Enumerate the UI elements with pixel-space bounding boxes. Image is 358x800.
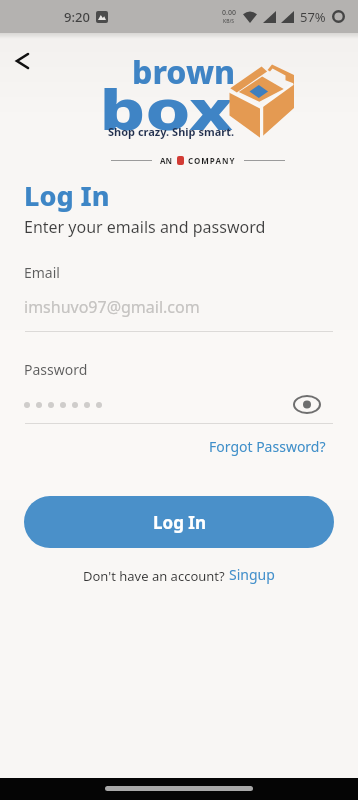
staticText: brown [132,50,236,94]
staticText: Log In [153,511,206,534]
staticText: Don't have an account? [83,567,229,585]
staticText: Enter your emails and password [24,216,266,238]
staticText: Log In [24,177,110,214]
staticText: 9:20 [64,8,90,26]
staticText: box [99,71,233,146]
staticText: Password [24,360,88,379]
staticText: Email [24,263,60,282]
button[interactable]: Singup [229,566,275,585]
staticText: imshuvo97@gmail.com [24,296,200,318]
staticText: Forgot Password? [209,437,326,456]
button[interactable] [8,47,36,75]
button[interactable] [289,391,325,417]
button[interactable]: Log In [24,496,334,548]
staticText: KB/S [223,18,235,25]
staticText: AN [160,155,173,166]
button[interactable]: Forgot Password? [209,437,326,456]
staticText: Shop crazy. Ship smart. [108,124,235,139]
staticText: COMPANY [188,155,236,166]
staticText: 57% [300,8,326,26]
staticText: Singup [229,565,275,584]
staticText: 0.00 [222,8,236,18]
